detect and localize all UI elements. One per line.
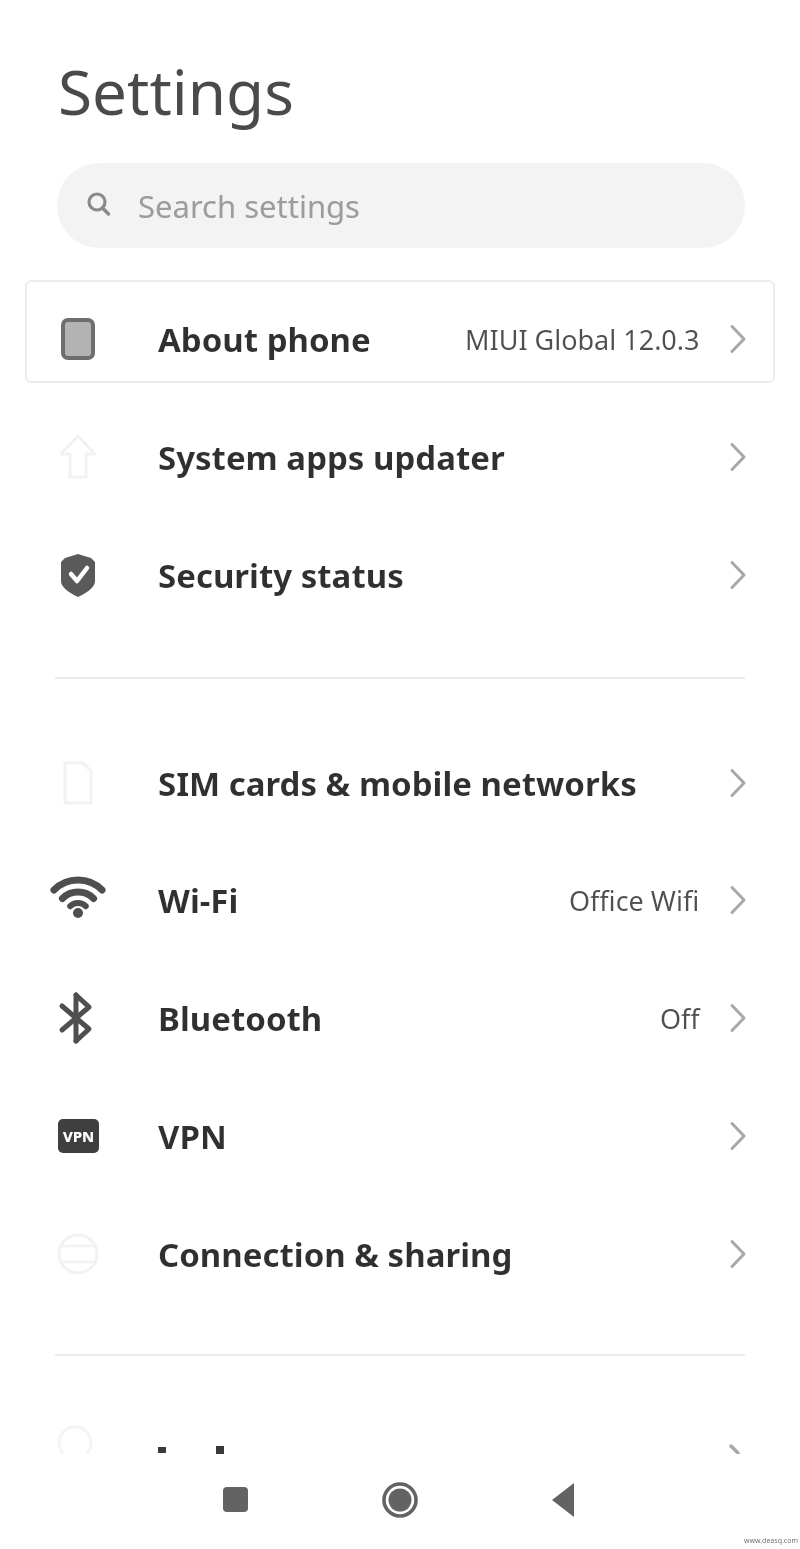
button[interactable]: SIM cards & mobile networks xyxy=(0,724,800,842)
button[interactable]: Connection & sharing xyxy=(0,1195,800,1313)
staticText: Search settings xyxy=(138,185,360,227)
staticText: MIUI Global 12.0.3 xyxy=(465,321,700,358)
staticText: Bluetooth xyxy=(158,996,323,1041)
button[interactable]: About phone xyxy=(0,280,800,398)
staticText: Office Wifi xyxy=(569,882,700,919)
button[interactable]: Search settings xyxy=(57,163,745,248)
staticText: VPN xyxy=(63,1126,95,1146)
button[interactable] xyxy=(380,1480,420,1520)
button[interactable]: Bluetooth xyxy=(0,959,800,1077)
staticText: Connection & sharing xyxy=(158,1232,513,1277)
staticText: SIM cards & mobile networks xyxy=(158,761,637,806)
staticText: VPN xyxy=(158,1114,227,1159)
button[interactable]: VPN xyxy=(0,1077,800,1195)
staticText: www.deasq.com xyxy=(744,1536,798,1546)
staticText: About phone xyxy=(158,317,371,362)
button[interactable]: Security status xyxy=(0,516,800,634)
staticText: Off xyxy=(660,1000,700,1037)
button[interactable] xyxy=(543,1480,583,1520)
staticText: System apps updater xyxy=(158,435,505,480)
button[interactable] xyxy=(223,1487,248,1512)
staticText: Wi-Fi xyxy=(158,878,239,923)
staticText: Settings xyxy=(58,49,294,133)
button[interactable]: System apps updater xyxy=(0,398,800,516)
button[interactable]: Wi-Fi xyxy=(0,841,800,959)
staticText: Security status xyxy=(158,553,404,598)
